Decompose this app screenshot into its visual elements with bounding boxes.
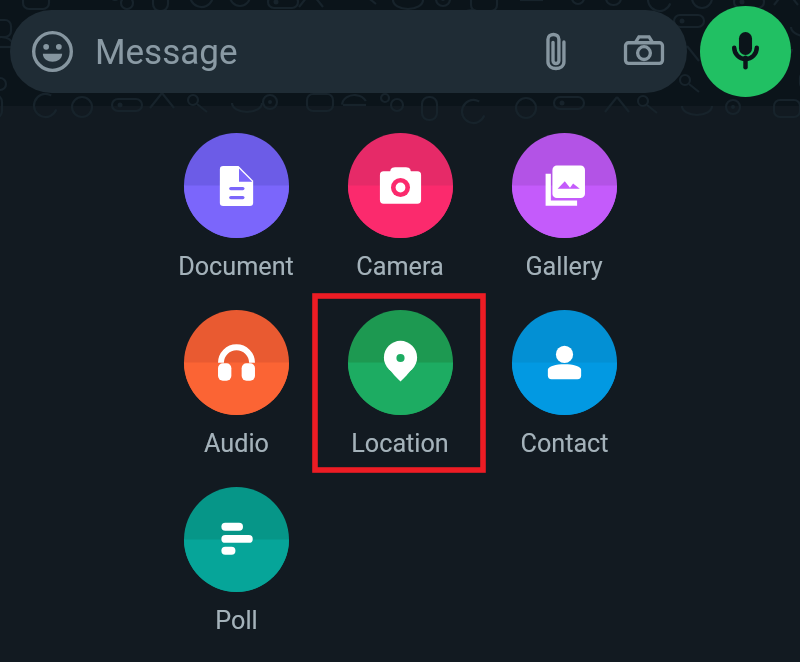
button[interactable]: Voice message (700, 6, 791, 97)
button[interactable]: Poll (154, 479, 318, 631)
button[interactable]: Document (154, 125, 318, 277)
button[interactable]: Emoji (22, 21, 82, 81)
staticText: Camera (356, 252, 444, 282)
button[interactable]: Gallery (482, 125, 646, 277)
staticText: Gallery (525, 252, 603, 282)
button[interactable]: Audio (154, 302, 318, 454)
staticText: Poll (215, 606, 258, 636)
staticText: Message (95, 32, 238, 73)
staticText: Contact (520, 429, 609, 459)
staticText: Audio (204, 429, 269, 459)
button[interactable]: Camera (619, 27, 669, 77)
button[interactable]: Camera (318, 125, 482, 277)
button[interactable]: Emoji (10, 10, 687, 93)
button[interactable]: Contact (482, 302, 646, 454)
staticText: Document (178, 252, 294, 282)
staticText: Location (351, 429, 449, 459)
button[interactable]: Location (318, 302, 482, 454)
button[interactable]: Attach (532, 27, 582, 77)
